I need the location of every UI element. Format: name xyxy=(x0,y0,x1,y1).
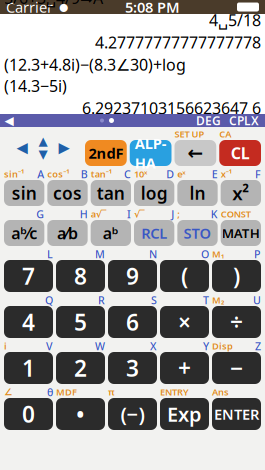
staticText: RCL xyxy=(141,223,167,243)
button[interactable]: 9 xyxy=(108,260,157,292)
staticText: S xyxy=(151,293,157,307)
button[interactable]: Down xyxy=(33,148,53,160)
button[interactable]: × xyxy=(160,306,209,338)
staticText: W xyxy=(95,339,105,353)
staticText: ● xyxy=(59,1,68,13)
button[interactable]: ÷ xyxy=(212,306,261,338)
button[interactable]: 8 xyxy=(56,260,105,292)
button[interactable]: Up xyxy=(33,135,53,147)
button[interactable]: 6 xyxy=(108,306,157,338)
staticText: ▲ xyxy=(38,134,47,148)
button[interactable]: Right xyxy=(53,134,75,160)
staticText: log xyxy=(141,181,168,204)
staticText: x⁻¹ xyxy=(221,168,232,180)
staticText: aᵇ⁄c xyxy=(11,222,37,244)
staticText: π xyxy=(108,386,115,398)
staticText: O xyxy=(201,247,209,261)
staticText: 4.27777777777777778 xyxy=(95,32,261,53)
button[interactable]: 4 xyxy=(4,306,53,338)
staticText: B xyxy=(81,167,88,181)
staticText: + xyxy=(178,353,191,383)
button[interactable]: 5 xyxy=(56,306,105,338)
button[interactable]: Previous page xyxy=(0,114,18,127)
button[interactable]: 7 xyxy=(4,260,53,292)
staticText: Y xyxy=(203,339,209,353)
staticText: √‾ xyxy=(134,208,145,220)
staticText: 6.29237103156623647 6 xyxy=(82,97,261,119)
staticText: ◀ xyxy=(4,114,13,127)
staticText: 0 xyxy=(22,399,35,429)
staticText xyxy=(53,0,59,22)
staticText: CA xyxy=(219,128,231,140)
staticText: tan⁻¹ xyxy=(91,168,112,180)
staticText: T xyxy=(203,293,209,307)
staticText: Exp xyxy=(167,401,202,427)
button[interactable]: 1 xyxy=(4,352,53,384)
staticText: M₁ xyxy=(212,248,224,260)
staticText: D xyxy=(166,167,174,181)
staticText: Ans xyxy=(212,386,229,398)
staticText: M xyxy=(95,247,105,261)
staticText: 1 xyxy=(22,353,35,383)
button[interactable]: x² xyxy=(221,180,261,206)
button[interactable]: tan xyxy=(91,180,131,206)
staticText: STO xyxy=(183,223,211,243)
staticText: G xyxy=(36,207,44,221)
staticText: cos xyxy=(53,181,82,204)
button[interactable]: • xyxy=(56,398,105,430)
staticText: • xyxy=(76,399,85,429)
staticText: 2ndF xyxy=(88,143,123,163)
staticText: CONST xyxy=(221,208,251,220)
staticText: ) xyxy=(233,261,240,291)
staticText: U xyxy=(253,293,261,307)
staticText: θ xyxy=(47,385,53,399)
staticText: 4␣5/18 xyxy=(209,9,261,31)
staticText: (12.3+4.8i)−(8.3∠30)+log (14.3−5i) xyxy=(4,54,186,96)
button[interactable]: RCL xyxy=(134,220,174,246)
button[interactable]: − xyxy=(212,352,261,384)
staticText: SET UP xyxy=(174,128,204,140)
staticText: ÷ xyxy=(230,307,243,337)
button[interactable]: sin xyxy=(4,180,44,206)
button[interactable]: Exp xyxy=(160,398,209,430)
button[interactable]: STO xyxy=(177,220,218,246)
staticText: V xyxy=(46,339,53,353)
button[interactable]: log xyxy=(134,180,174,206)
button[interactable]: cos xyxy=(47,180,88,206)
staticText: J xyxy=(171,207,174,221)
staticText: CL xyxy=(231,142,250,164)
staticText: x² xyxy=(232,181,249,205)
staticText: ENTER xyxy=(214,404,259,424)
button[interactable]: (−) xyxy=(108,398,157,430)
button[interactable]: ln xyxy=(177,180,218,206)
button[interactable]: 2ndF xyxy=(85,140,127,166)
button[interactable]: CL xyxy=(219,140,261,166)
button[interactable]: aᵇ⁄c xyxy=(4,220,44,246)
button[interactable]: 0 xyxy=(4,398,53,430)
staticText: sin xyxy=(12,181,37,204)
button[interactable]: ( xyxy=(160,260,209,292)
staticText: C xyxy=(124,167,131,181)
staticText: ALPHA xyxy=(135,133,167,172)
staticText: DEG xyxy=(196,112,221,128)
button[interactable]: 2 xyxy=(56,352,105,384)
button[interactable]: 3 xyxy=(108,352,157,384)
button[interactable]: aᵇ xyxy=(91,220,131,246)
staticText: 10ˣ xyxy=(134,168,147,180)
staticText: tan xyxy=(97,181,125,204)
staticText: ▶ xyxy=(58,139,69,156)
staticText: Z xyxy=(255,339,261,353)
button[interactable]: ) xyxy=(212,260,261,292)
staticText: 5/6+3␣4/9⇒A xyxy=(4,0,103,8)
button[interactable]: a⁄b xyxy=(47,220,88,246)
staticText: N xyxy=(149,247,157,261)
staticText: 6 xyxy=(126,307,139,337)
button[interactable]: ← xyxy=(174,140,216,166)
button[interactable]: ALPHA xyxy=(130,140,172,166)
button[interactable]: Left xyxy=(11,134,33,160)
button[interactable]: MATH xyxy=(221,220,261,246)
staticText: CPLX xyxy=(229,112,259,128)
button[interactable]: + xyxy=(160,352,209,384)
button[interactable]: ENTER xyxy=(212,398,261,430)
staticText: A xyxy=(37,167,44,181)
